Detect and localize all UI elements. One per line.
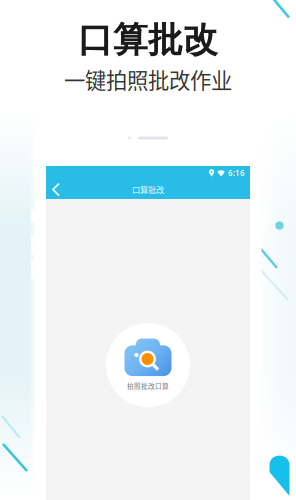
button[interactable]: 拍照批改口算 (106, 323, 190, 407)
staticText: 一键拍照批改作业 (64, 64, 232, 95)
staticText: 6:16 (228, 168, 245, 178)
staticText: 口算批改 (132, 183, 164, 195)
button[interactable]: Back (46, 180, 66, 199)
staticText: 拍照批改口算 (127, 381, 169, 391)
staticText: 口算批改 (78, 18, 218, 62)
